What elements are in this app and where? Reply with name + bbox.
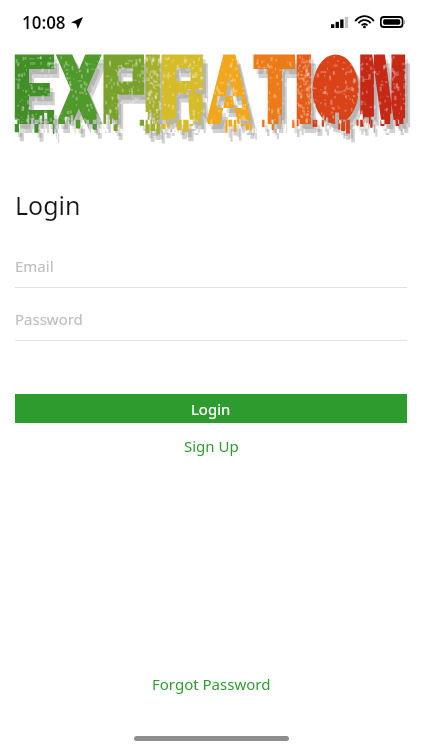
button[interactable]: Login (15, 394, 407, 423)
other: Expiration logo (0, 44, 422, 160)
button[interactable]: Email (15, 256, 407, 288)
button[interactable]: Forgot Password (0, 669, 422, 699)
staticText: Forgot Password (152, 674, 271, 694)
staticText: 10:08 (22, 11, 66, 34)
staticText: Sign Up (184, 436, 239, 456)
staticText: Password (15, 309, 83, 329)
staticText: Email (15, 256, 54, 276)
button[interactable]: Password (15, 309, 407, 341)
staticText: Login (15, 188, 81, 222)
button[interactable]: Sign Up (15, 433, 407, 459)
staticText: Login (191, 399, 231, 419)
